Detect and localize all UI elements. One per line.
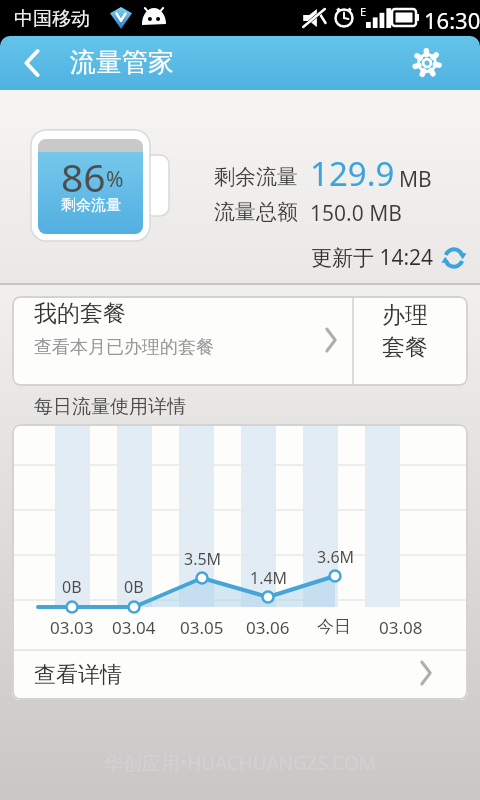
staticText: 办理 [382,301,428,330]
staticText: 0B [62,576,82,598]
staticText: 0B [124,576,144,598]
staticText: 03.06 [246,616,290,639]
staticText: 1.4M [250,567,288,589]
button[interactable]: 查看详情 [12,651,468,700]
staticText: 中国移动 [14,7,90,31]
staticText: 129.9 [310,151,395,196]
staticText: 3.5M [184,548,222,570]
button[interactable] [10,41,54,85]
staticText: 我的套餐 [34,299,126,328]
button[interactable] [405,41,449,85]
staticText: 03.08 [379,616,423,639]
button[interactable]: 更新于 14:24 [311,243,466,272]
staticText: 查看本月已办理的套餐 [34,336,214,359]
button[interactable]: 我的套餐 [12,296,352,386]
staticText: 套餐 [382,333,428,362]
staticText: 查看详情 [34,661,122,689]
staticText: 86 [61,150,106,203]
staticText: 今日 [317,616,351,637]
staticText: 16:30 [424,5,480,35]
staticText: 更新于 14:24 [311,243,434,272]
staticText: E [360,4,367,19]
staticText: MB [399,165,432,194]
staticText: 03.03 [50,616,94,639]
staticText: 03.05 [180,616,224,639]
staticText: 剩余流量 [61,196,121,215]
staticText: 流量总额 [214,199,298,225]
staticText: 03.04 [112,616,156,639]
staticText: 剩余流量 [214,164,298,190]
staticText: 3.6M [317,546,355,568]
staticText: 流量管家 [70,46,174,79]
staticText: 每日流量使用详情 [34,395,186,419]
staticText: % [106,165,124,194]
staticText: 150.0 MB [310,199,402,228]
button[interactable]: 办理 [354,296,468,386]
